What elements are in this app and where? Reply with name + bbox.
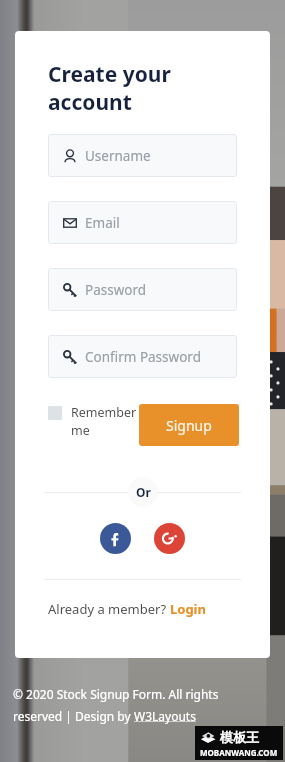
button[interactable]: Password bbox=[48, 268, 237, 311]
staticText: Signup bbox=[166, 416, 212, 435]
staticText: Remember me bbox=[71, 404, 137, 439]
staticText: © 2020 Stock Signup Form. All rights bbox=[13, 686, 219, 702]
button[interactable]: W3Layouts bbox=[134, 708, 196, 724]
button[interactable]: Remember me bbox=[48, 404, 137, 439]
staticText: Confirm Password bbox=[85, 348, 201, 366]
button[interactable]: Sign up with Facebook bbox=[100, 523, 131, 554]
staticText: Already a member? bbox=[48, 600, 170, 618]
button[interactable]: Confirm Password bbox=[48, 335, 237, 378]
staticText: reserved | Design by bbox=[13, 708, 134, 724]
button[interactable]: Username bbox=[48, 134, 237, 177]
button[interactable]: Signup bbox=[139, 404, 239, 446]
staticText: Password bbox=[85, 281, 147, 299]
staticText: Create your account bbox=[48, 60, 171, 116]
staticText: Or bbox=[136, 484, 151, 500]
staticText: Username bbox=[85, 147, 151, 165]
button[interactable]: Sign up with Google bbox=[154, 523, 185, 554]
staticText: Login bbox=[170, 600, 206, 618]
staticText: Email bbox=[85, 214, 120, 232]
button[interactable]: Email bbox=[48, 201, 237, 244]
staticText: 模板王 bbox=[220, 729, 259, 745]
staticText: MOBANWANG.COM bbox=[200, 747, 278, 758]
button[interactable]: Already a member? bbox=[48, 600, 270, 618]
